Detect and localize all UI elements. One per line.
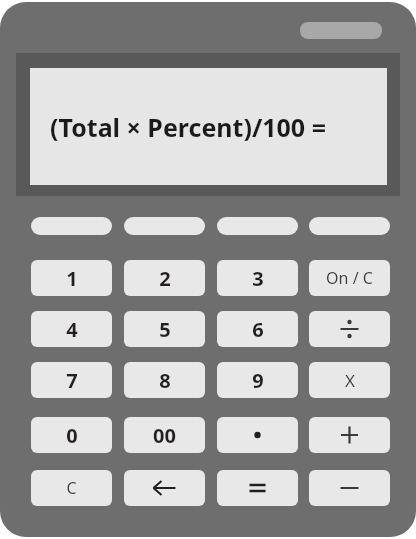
staticText: 00 [153,422,176,449]
staticText: X [345,369,355,392]
staticText: C [66,477,77,499]
button[interactable]: Memory key 2 [124,217,205,235]
button[interactable]: 2 [124,260,205,296]
button[interactable]: C [31,470,112,506]
staticText: On / C [326,267,373,289]
button[interactable]: 6 [217,311,298,347]
button[interactable]: 1 [31,260,112,296]
button[interactable]: X [309,362,390,398]
staticText: (Total × Percent)/100 = [50,110,326,144]
button[interactable]: Memory key 4 [309,217,390,235]
button[interactable]: Memory key 1 [31,217,112,235]
button[interactable]: 8 [124,362,205,398]
button[interactable]: 9 [217,362,298,398]
staticText: 8 [159,367,171,394]
staticText: 9 [252,367,264,394]
button[interactable]: 5 [124,311,205,347]
button[interactable]: Equals [217,470,298,506]
staticText: 7 [66,367,78,394]
button[interactable]: Minus [309,470,390,506]
button[interactable]: Memory key 3 [217,217,298,235]
button[interactable]: 0 [31,417,112,453]
button[interactable]: Plus [309,417,390,453]
button[interactable]: 3 [217,260,298,296]
staticText: 2 [159,265,171,292]
staticText: 1 [66,265,78,292]
button[interactable]: Decimal point [217,417,298,453]
button[interactable]: On / C [309,260,390,296]
staticText: 3 [252,265,264,292]
button[interactable]: 4 [31,311,112,347]
staticText: 0 [66,422,78,449]
button[interactable]: Divide [309,311,390,347]
staticText: 5 [159,316,171,343]
button[interactable]: 7 [31,362,112,398]
button[interactable]: Backspace [124,470,205,506]
staticText: 6 [252,316,264,343]
button[interactable]: 00 [124,417,205,453]
staticText: 4 [66,316,78,343]
